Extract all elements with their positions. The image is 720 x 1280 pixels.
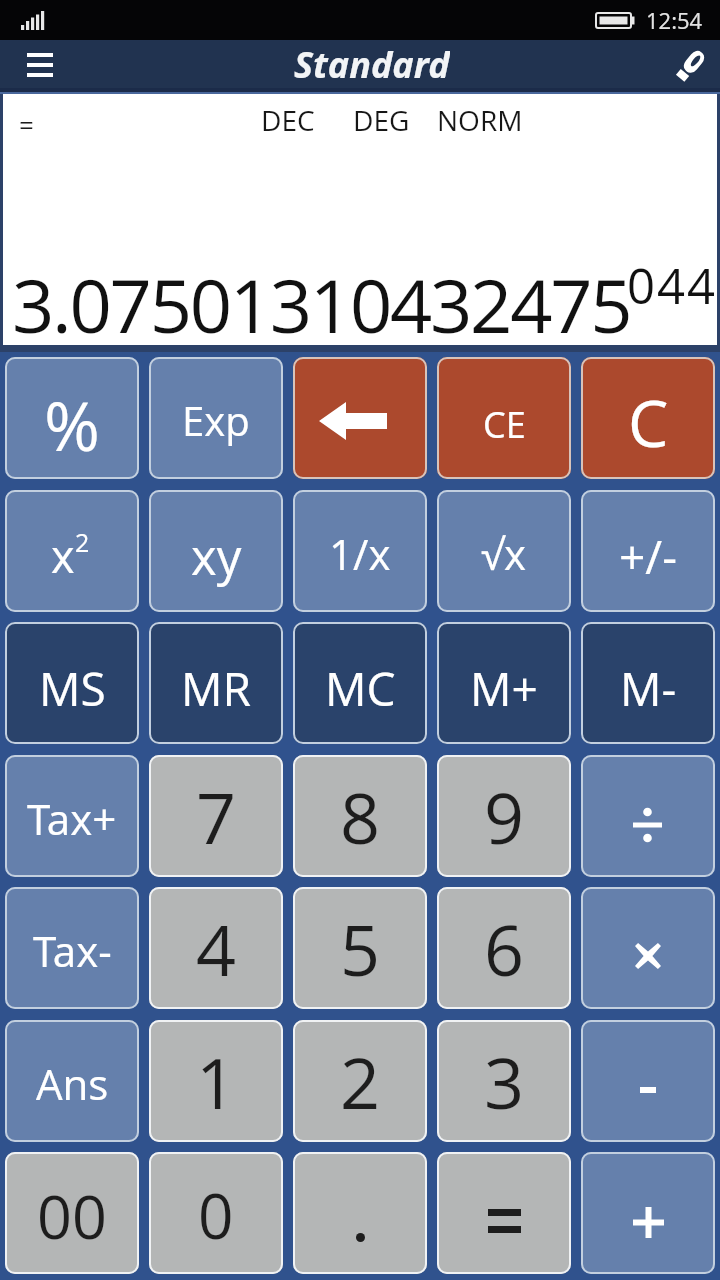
- staticText: =: [19, 107, 34, 142]
- button[interactable]: CE: [437, 357, 571, 479]
- staticText: CE: [483, 400, 526, 449]
- staticText: M+: [470, 657, 538, 720]
- staticText: C: [628, 379, 669, 466]
- staticText: 7: [196, 769, 237, 864]
- staticText: +/-: [619, 525, 677, 588]
- staticText: MR: [181, 657, 251, 720]
- staticText: 8: [340, 769, 381, 864]
- button[interactable]: 2: [293, 1020, 427, 1142]
- staticText: DEG: [353, 101, 410, 139]
- staticText: √x: [481, 525, 527, 582]
- staticText: 00: [37, 1174, 107, 1257]
- button[interactable]: 0: [149, 1152, 283, 1274]
- button[interactable]: 4: [149, 887, 283, 1009]
- button[interactable]: [293, 1152, 427, 1274]
- button[interactable]: 7: [149, 755, 283, 877]
- staticText: 2: [75, 525, 90, 559]
- staticText: Ans: [36, 1055, 109, 1112]
- staticText: 1/x: [329, 525, 391, 582]
- button[interactable]: xy: [149, 490, 283, 612]
- staticText: MS: [39, 657, 106, 720]
- staticText: 044: [627, 252, 718, 319]
- button[interactable]: 5: [293, 887, 427, 1009]
- button[interactable]: [670, 47, 710, 87]
- staticText: %: [44, 378, 100, 471]
- staticText: 9: [484, 769, 525, 864]
- button[interactable]: MR: [149, 622, 283, 744]
- staticText: 1: [196, 1034, 237, 1129]
- button[interactable]: Ans: [5, 1020, 139, 1142]
- button[interactable]: x: [5, 490, 139, 612]
- button[interactable]: 9: [437, 755, 571, 877]
- button[interactable]: 8: [293, 755, 427, 877]
- staticText: DEC: [261, 101, 315, 139]
- button[interactable]: MS: [5, 622, 139, 744]
- button[interactable]: 00: [5, 1152, 139, 1274]
- button[interactable]: [437, 1152, 571, 1274]
- staticText: 6: [484, 901, 525, 996]
- button[interactable]: %: [5, 357, 139, 479]
- button[interactable]: 1: [149, 1020, 283, 1142]
- staticText: 0: [198, 1173, 234, 1257]
- staticText: MC: [325, 657, 396, 720]
- button[interactable]: 1/x: [293, 490, 427, 612]
- button[interactable]: C: [581, 357, 715, 479]
- button[interactable]: M+: [437, 622, 571, 744]
- staticText: 3: [484, 1034, 525, 1129]
- staticText: Tax-: [33, 922, 112, 979]
- button[interactable]: [581, 1152, 715, 1274]
- button[interactable]: Tax+: [5, 755, 139, 877]
- button[interactable]: +/-: [581, 490, 715, 612]
- button[interactable]: MC: [293, 622, 427, 744]
- staticText: 4: [196, 901, 237, 996]
- staticText: 3.07501310432475: [12, 254, 631, 355]
- staticText: Tax+: [27, 790, 117, 847]
- staticText: NORM: [437, 101, 523, 139]
- staticText: Exp: [182, 393, 250, 447]
- staticText: xy: [191, 523, 242, 590]
- button[interactable]: Tax-: [5, 887, 139, 1009]
- button[interactable]: [581, 1020, 715, 1142]
- staticText: 12:54: [646, 5, 703, 35]
- staticText: M-: [620, 657, 677, 720]
- staticText: 2: [340, 1034, 381, 1129]
- button[interactable]: √x: [437, 490, 571, 612]
- button[interactable]: M-: [581, 622, 715, 744]
- button[interactable]: 3: [437, 1020, 571, 1142]
- staticText: 5: [340, 901, 381, 996]
- button[interactable]: [20, 45, 60, 83]
- button[interactable]: Exp: [149, 357, 283, 479]
- staticText: Standard: [294, 40, 450, 88]
- staticText: x: [51, 525, 75, 586]
- button[interactable]: [293, 357, 427, 479]
- button[interactable]: 6: [437, 887, 571, 1009]
- button[interactable]: [581, 755, 715, 877]
- button[interactable]: [581, 887, 715, 1009]
